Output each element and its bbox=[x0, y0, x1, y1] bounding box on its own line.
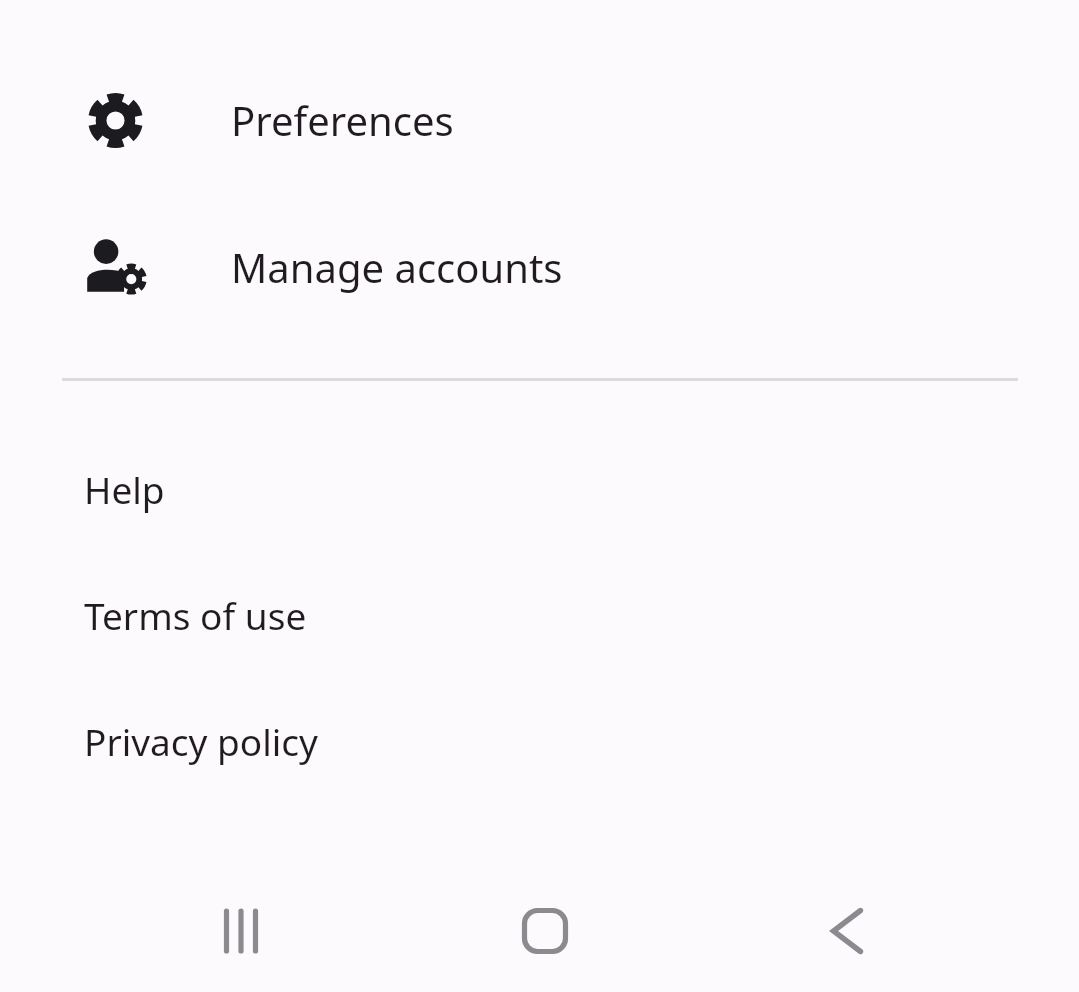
button[interactable]: Privacy policy bbox=[0, 696, 1079, 786]
staticText: Privacy policy bbox=[84, 716, 318, 766]
staticText: Preferences bbox=[231, 93, 454, 147]
button[interactable]: Manage accounts bbox=[0, 217, 1079, 317]
button[interactable]: Preferences bbox=[0, 70, 1079, 170]
button[interactable]: Terms of use bbox=[0, 570, 1079, 660]
staticText: Manage accounts bbox=[231, 240, 563, 294]
button[interactable]: Back bbox=[786, 872, 904, 990]
button[interactable]: Home bbox=[486, 872, 604, 990]
staticText: Terms of use bbox=[84, 590, 307, 640]
button[interactable]: Help bbox=[0, 444, 1079, 534]
staticText: Help bbox=[84, 464, 165, 514]
button[interactable]: Recent apps bbox=[182, 872, 300, 990]
